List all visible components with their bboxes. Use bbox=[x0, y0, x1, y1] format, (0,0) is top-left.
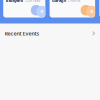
button[interactable]: Backyard bbox=[3, 0, 45, 17]
button[interactable]: Garage bbox=[50, 0, 95, 17]
button[interactable]: Recent Events bbox=[0, 23, 100, 43]
staticText: Garage bbox=[52, 0, 66, 3]
staticText: Live now bbox=[25, 0, 40, 3]
staticText: 2 alerts bbox=[68, 0, 81, 3]
button[interactable]: Front bbox=[99, 0, 100, 17]
staticText: Recent Events bbox=[4, 30, 39, 37]
staticText: Backyard bbox=[6, 0, 24, 3]
